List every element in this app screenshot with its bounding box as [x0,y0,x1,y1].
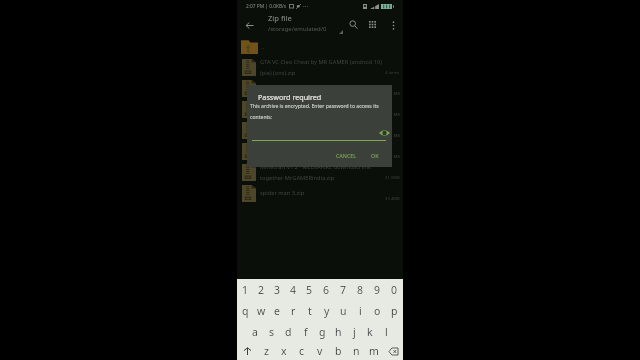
staticText: 12.1 MB [384,91,400,97]
button[interactable]: 8 [352,279,369,300]
staticText: o [374,304,381,318]
button[interactable]: Mr GAMER cleo pack.zip [237,78,403,99]
staticText: 8 [357,283,364,297]
button[interactable]: k [362,321,378,342]
staticText: GTA SA cheats pack.zip [260,147,382,155]
button[interactable]: n [347,342,365,360]
button[interactable]: l [378,321,394,342]
button[interactable]: OK [366,148,384,163]
staticText: z [264,344,269,358]
button[interactable]: o [369,300,386,321]
button[interactable]: GTA SA cleo mods.zip [237,99,403,120]
button[interactable]: p [386,300,403,321]
staticText: f [304,325,308,339]
button[interactable]: 0 [386,279,403,300]
button[interactable]: f [297,321,314,342]
staticText: k [367,325,373,339]
button[interactable]: Grid view [364,16,381,33]
staticText: q [242,304,249,318]
button[interactable]: Minecraft v1.2* MEDIAFIRE download link … [237,162,403,183]
button[interactable]: g [314,321,330,342]
button[interactable]: h [330,321,346,342]
button[interactable]: .. [237,36,403,57]
button[interactable]: 7 [335,279,352,300]
button[interactable]: 1 [237,279,253,300]
staticText: w [257,304,266,318]
staticText: 18.2 MB [384,133,400,139]
button[interactable]: x [275,342,293,360]
button[interactable]: b [329,342,347,360]
button[interactable]: c [293,342,311,360]
staticText: r [291,304,296,318]
button[interactable]: v [311,342,329,360]
button[interactable]: Back [240,16,258,34]
button[interactable]: 9 [369,279,386,300]
staticText: Zip file [268,13,292,23]
button[interactable]: r [285,300,301,321]
button[interactable]: i [352,300,369,321]
staticText: GTA SA cleo mods.zip [260,105,382,113]
staticText: h [335,325,342,339]
staticText: Password required [258,92,322,102]
staticText: j [353,325,356,339]
button[interactable]: GTA VC mod pack.zip [237,120,403,141]
button[interactable]: Shift [237,342,257,360]
staticText: x [281,344,287,358]
button[interactable]: j [346,321,362,342]
button[interactable]: t [301,300,318,321]
button[interactable]: Search [345,16,362,33]
button[interactable]: a [246,321,263,342]
button[interactable]: e [269,300,285,321]
staticText: a [252,325,258,339]
staticText: 31.0MB [385,175,400,181]
button[interactable]: More options [385,17,401,33]
button[interactable]: q [237,300,253,321]
button[interactable]: 6 [318,279,335,300]
button[interactable]: GTA SA cheats pack.zip [237,141,403,162]
button[interactable]: Show password [378,128,390,138]
staticText: GTA VC Cleo Cheat by MR GAMER (android 1… [260,58,382,76]
staticText: Minecraft v1.2* MEDIAFIRE download link … [260,163,382,181]
staticText: This archive is encrypted. Enter passwor… [250,103,390,121]
staticText: 4 [290,283,297,297]
staticText: 5 [306,283,313,297]
button[interactable]: GTA VC Cleo Cheat by MR GAMER (android 1… [237,57,403,78]
button[interactable]: w [253,300,269,321]
staticText: 27.5 MB [384,154,400,160]
staticText: 23.6 MB [384,112,400,118]
staticText: spider man 3.zip [260,189,382,197]
button[interactable]: CANCEL [331,148,362,163]
staticText: 6 [323,283,330,297]
staticText: 3 [274,283,281,297]
staticText: t [308,304,312,318]
staticText: y [324,304,330,318]
staticText: p [391,304,398,318]
button[interactable]: d [280,321,297,342]
button[interactable]: Backspace [383,342,403,360]
staticText: 4 items [385,70,400,76]
staticText: 0 [391,283,398,297]
staticText: n [353,344,360,358]
staticText: .. [261,43,265,51]
staticText: l [385,325,388,339]
staticText: c [299,344,305,358]
button[interactable]: 3 [269,279,285,300]
button[interactable]: 5 [301,279,318,300]
staticText: CANCEL [336,152,357,159]
button[interactable]: spider man 3.zip [237,183,403,204]
staticText: s [269,325,275,339]
button[interactable]: 4 [285,279,301,300]
button[interactable]: y [318,300,335,321]
staticText: g [319,325,326,339]
button[interactable]: u [335,300,352,321]
staticText: 2 [258,283,265,297]
staticText: OK [371,152,379,159]
staticText: /storage/emulated/0 [268,25,327,33]
button[interactable]: 2 [253,279,269,300]
button[interactable]: z [257,342,275,360]
button[interactable]: s [263,321,280,342]
staticText: m [369,344,379,358]
staticText: GTA VC mod pack.zip [260,126,382,134]
staticText: b [335,344,342,358]
button[interactable]: m [365,342,383,360]
